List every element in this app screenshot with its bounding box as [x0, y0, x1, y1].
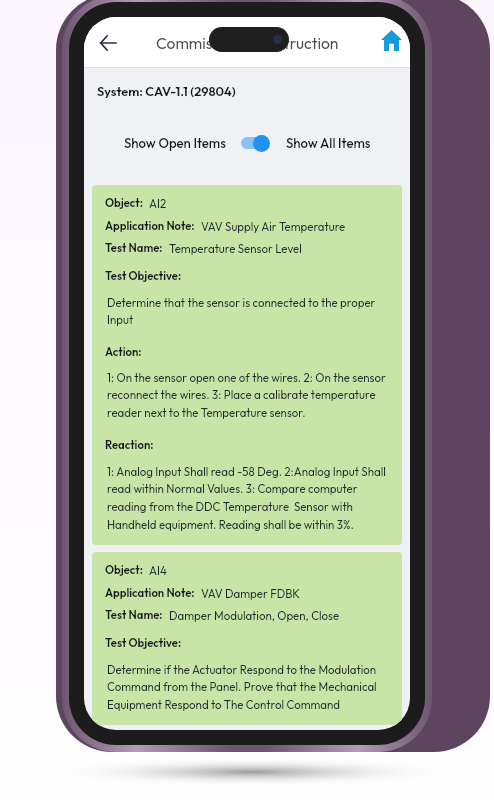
staticText: 1: Analog Input Shall read -58 Deg. 2:An… — [107, 464, 389, 532]
staticText: Action: — [105, 345, 142, 359]
staticText: Test Objective: — [105, 636, 182, 650]
staticText: Determine that the sensor is connected t… — [107, 295, 389, 327]
staticText: Commissioning Instruction — [156, 33, 339, 53]
staticText: Application Note: — [105, 586, 195, 600]
button[interactable]: Home — [375, 24, 407, 56]
button[interactable]: Object: — [92, 552, 402, 725]
staticText: Show All Items — [286, 135, 371, 152]
staticText: Object: — [105, 196, 143, 210]
staticText: AI4 — [149, 563, 167, 577]
button[interactable]: Show all items toggle — [241, 134, 269, 152]
staticText: VAV Damper FDBK — [201, 586, 300, 600]
staticText: Show Open Items — [124, 135, 226, 152]
staticText: Test Objective: — [105, 269, 182, 283]
button[interactable]: Back — [92, 27, 124, 59]
staticText: Test Name: — [105, 241, 163, 255]
staticText: Temperature Sensor Level — [169, 241, 302, 255]
staticText: Determine if the Actuator Respond to the… — [107, 662, 389, 712]
button[interactable]: Object: — [92, 185, 402, 545]
staticText: Application Note: — [105, 219, 195, 233]
staticText: AI2 — [149, 196, 167, 210]
staticText: Reaction: — [105, 438, 154, 452]
staticText: System: CAV-1.1 (29804) — [97, 83, 236, 99]
staticText: 1: On the sensor open one of the wires. … — [107, 370, 389, 420]
staticText: VAV Supply Air Temperature — [201, 219, 346, 233]
staticText: Object: — [105, 563, 143, 577]
staticText: Test Name: — [105, 608, 163, 622]
staticText: Damper Modulation, Open, Close — [169, 608, 340, 622]
